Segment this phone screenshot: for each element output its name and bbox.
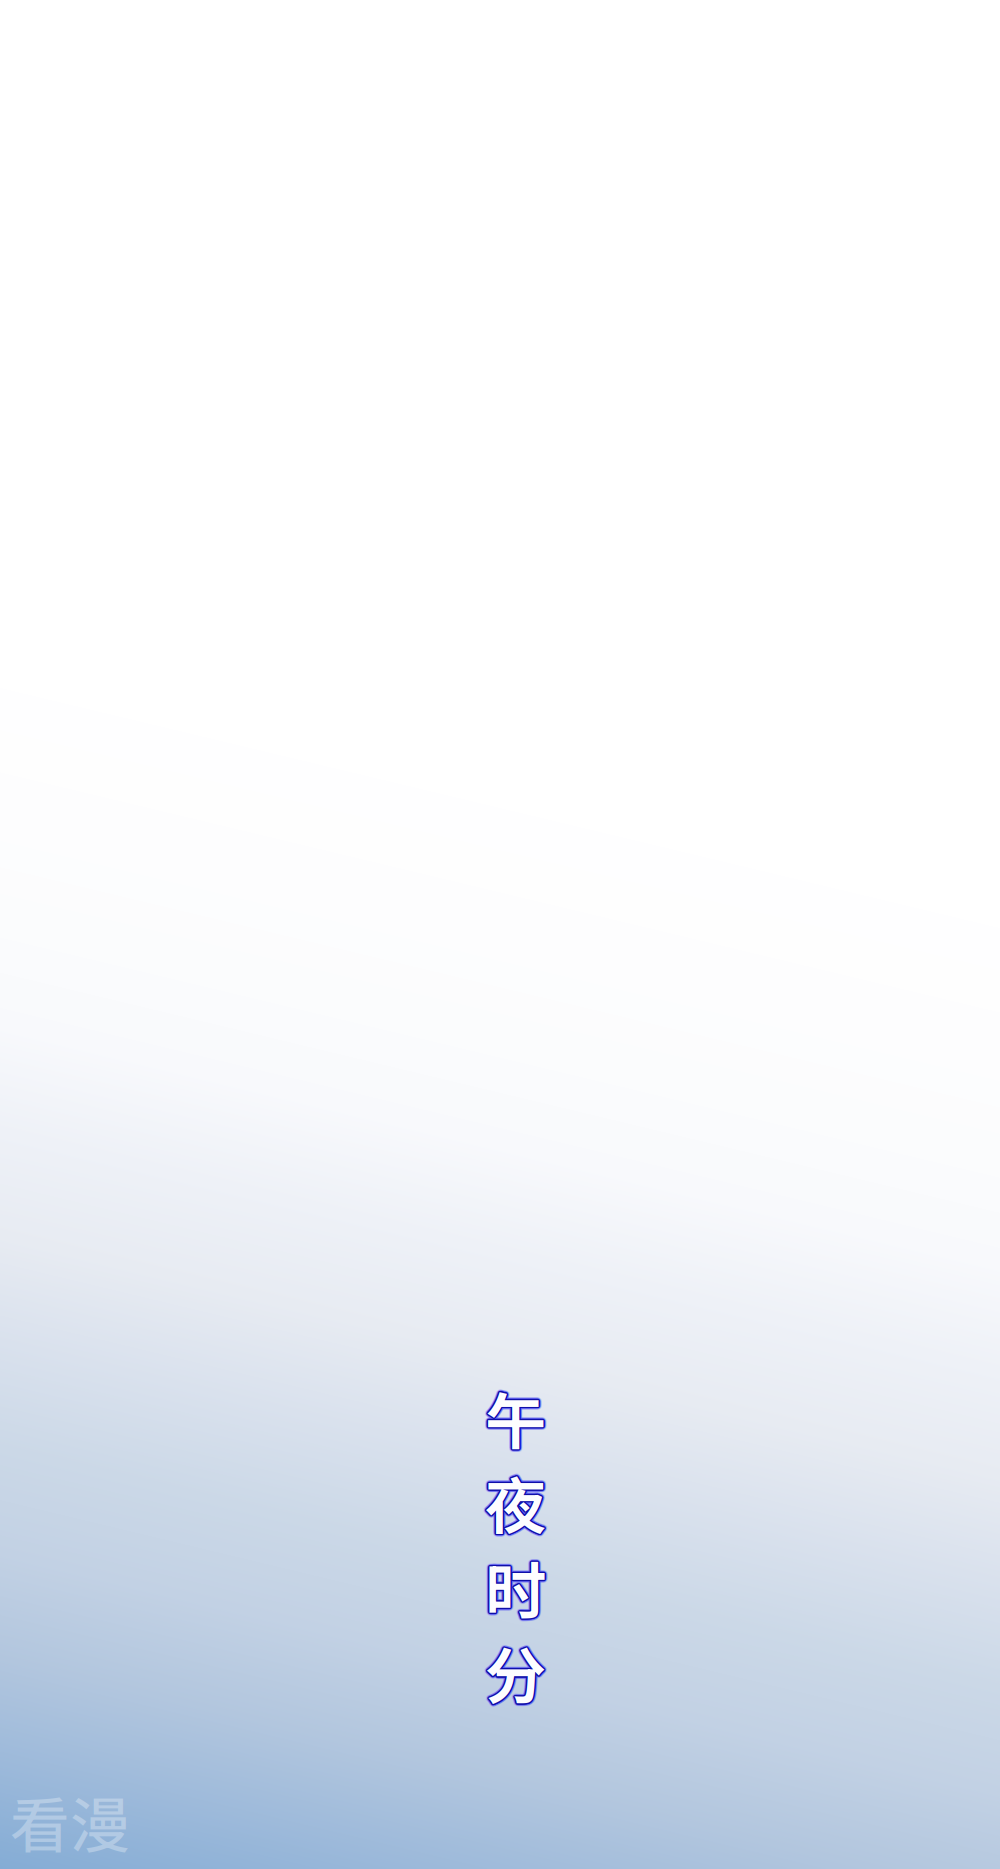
staticText: 午 bbox=[484, 1374, 545, 1463]
staticText: 夜 bbox=[488, 1459, 549, 1548]
staticText: 时 bbox=[486, 1541, 547, 1630]
staticText: 午 bbox=[486, 1376, 547, 1464]
staticText: 时 bbox=[484, 1540, 545, 1629]
staticText: 分 bbox=[484, 1630, 545, 1719]
staticText: 夜 bbox=[485, 1459, 546, 1548]
staticText: 分 bbox=[486, 1628, 547, 1717]
staticText: 夜 bbox=[483, 1457, 544, 1546]
staticText: 时 bbox=[485, 1544, 546, 1633]
staticText: 时 bbox=[485, 1542, 546, 1630]
staticText: 时 bbox=[485, 1541, 546, 1630]
staticText: 夜 bbox=[486, 1459, 547, 1547]
staticText: 夜 bbox=[484, 1458, 545, 1547]
staticText: 时 bbox=[483, 1543, 544, 1631]
staticText: 午 bbox=[484, 1372, 545, 1461]
staticText: 时 bbox=[483, 1541, 544, 1629]
staticText: 午 bbox=[484, 1374, 545, 1463]
staticText: 午 bbox=[484, 1373, 545, 1462]
staticText: 看漫 bbox=[10, 1778, 130, 1865]
button[interactable]: 午夜时分 — 漫画页面 bbox=[0, 0, 1000, 1869]
staticText: 时 bbox=[484, 1545, 545, 1634]
staticText: 午 bbox=[484, 1373, 545, 1461]
staticText: 夜 bbox=[488, 1457, 549, 1545]
staticText: 分 bbox=[487, 1628, 548, 1717]
staticText: 分 bbox=[488, 1627, 549, 1716]
staticText: 夜 bbox=[485, 1460, 546, 1549]
staticText: 时 bbox=[486, 1543, 547, 1632]
staticText: 分 bbox=[484, 1625, 545, 1714]
staticText: 分 bbox=[484, 1628, 545, 1717]
staticText: 夜 bbox=[485, 1456, 546, 1545]
staticText: 时 bbox=[487, 1543, 548, 1632]
staticText: 时 bbox=[487, 1545, 548, 1633]
staticText: 时 bbox=[482, 1543, 543, 1631]
staticText: 分 bbox=[485, 1630, 546, 1719]
staticText: 午 bbox=[484, 1372, 545, 1460]
staticText: 时 bbox=[485, 1541, 546, 1629]
staticText: 午 bbox=[485, 1370, 546, 1459]
staticText: 夜 bbox=[483, 1460, 544, 1549]
staticText: 午 bbox=[484, 1371, 545, 1460]
staticText: 夜 bbox=[485, 1459, 546, 1548]
staticText: 夜 bbox=[485, 1459, 546, 1548]
staticText: 午 bbox=[484, 1375, 545, 1464]
staticText: 分 bbox=[483, 1627, 544, 1716]
staticText: 夜 bbox=[485, 1461, 546, 1549]
staticText: 时 bbox=[483, 1542, 544, 1631]
staticText: 午 bbox=[484, 1370, 545, 1459]
staticText: 午 bbox=[486, 1372, 547, 1461]
staticText: 时 bbox=[485, 1542, 546, 1630]
staticText: 分 bbox=[485, 1627, 546, 1716]
staticText: 分 bbox=[487, 1627, 548, 1715]
staticText: 夜 bbox=[484, 1458, 545, 1547]
staticText: 时 bbox=[484, 1544, 545, 1633]
staticText: 分 bbox=[487, 1627, 548, 1716]
staticText: 时 bbox=[482, 1544, 543, 1632]
staticText: 时 bbox=[486, 1541, 547, 1630]
staticText: 分 bbox=[485, 1629, 546, 1717]
staticText: 分 bbox=[486, 1628, 547, 1717]
staticText: 时 bbox=[488, 1544, 549, 1632]
staticText: 分 bbox=[486, 1626, 547, 1715]
staticText: 午 bbox=[485, 1374, 546, 1463]
staticText: 分 bbox=[483, 1629, 544, 1718]
staticText: 分 bbox=[484, 1626, 545, 1714]
staticText: 夜 bbox=[484, 1459, 545, 1547]
staticText: 夜 bbox=[483, 1458, 544, 1547]
staticText: 时 bbox=[485, 1544, 546, 1632]
staticText: 午 bbox=[485, 1372, 546, 1461]
staticText: 时 bbox=[484, 1542, 545, 1631]
staticText: 夜 bbox=[486, 1460, 547, 1548]
staticText: 夜 bbox=[485, 1457, 546, 1545]
staticText: 时 bbox=[484, 1543, 545, 1631]
staticText: 夜 bbox=[486, 1459, 547, 1548]
staticText: 夜 bbox=[487, 1459, 548, 1547]
staticText: 时 bbox=[486, 1543, 547, 1632]
staticText: 午 bbox=[486, 1374, 547, 1463]
staticText: 午 bbox=[486, 1375, 547, 1464]
staticText: 分 bbox=[486, 1627, 547, 1716]
staticText: 午 bbox=[487, 1372, 548, 1461]
staticText: 午 bbox=[487, 1374, 548, 1462]
staticText: 时 bbox=[485, 1545, 546, 1634]
staticText: 午 bbox=[485, 1372, 546, 1461]
staticText: 分 bbox=[484, 1627, 545, 1715]
staticText: 分 bbox=[482, 1626, 543, 1715]
staticText: 时 bbox=[484, 1541, 545, 1630]
staticText: 夜 bbox=[483, 1456, 544, 1545]
staticText: 午 bbox=[486, 1373, 547, 1462]
staticText: 分 bbox=[487, 1625, 548, 1714]
staticText: 分 bbox=[484, 1629, 545, 1718]
staticText: 分 bbox=[486, 1625, 547, 1714]
staticText: 夜 bbox=[487, 1458, 548, 1547]
staticText: 分 bbox=[482, 1627, 543, 1716]
staticText: 时 bbox=[484, 1544, 545, 1633]
staticText: 夜 bbox=[482, 1457, 543, 1545]
staticText: 夜 bbox=[483, 1459, 544, 1547]
staticText: 分 bbox=[484, 1628, 545, 1717]
staticText: 午 bbox=[488, 1372, 549, 1461]
staticText: 分 bbox=[483, 1628, 544, 1717]
staticText: 分 bbox=[485, 1626, 546, 1715]
staticText: 时 bbox=[488, 1541, 549, 1630]
staticText: 午 bbox=[483, 1375, 544, 1464]
